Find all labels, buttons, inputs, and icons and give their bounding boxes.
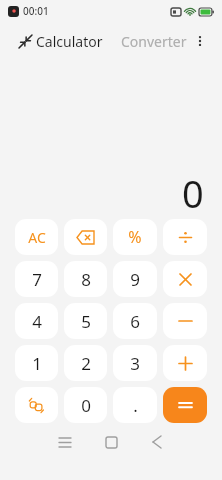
button[interactable]: More options bbox=[186, 27, 214, 55]
staticText: % bbox=[128, 226, 142, 248]
button[interactable]: Multiply bbox=[163, 261, 207, 297]
button[interactable]: 1 bbox=[15, 345, 58, 381]
button[interactable]: AC bbox=[15, 219, 58, 255]
button[interactable]: Minus bbox=[163, 303, 207, 339]
staticText: 6 bbox=[130, 310, 140, 333]
staticText: 0 bbox=[182, 167, 204, 219]
staticText: 8 bbox=[81, 268, 91, 291]
button[interactable]: 6 bbox=[113, 303, 157, 339]
staticText: 4 bbox=[32, 310, 42, 333]
staticText: 0 bbox=[81, 394, 91, 417]
staticText: 1 bbox=[32, 352, 42, 375]
button[interactable]: 8 bbox=[64, 261, 107, 297]
button[interactable]: 2 bbox=[64, 345, 107, 381]
button[interactable]: Collapse bbox=[10, 26, 40, 56]
staticText: 7 bbox=[32, 268, 42, 291]
button[interactable]: Equals bbox=[163, 387, 207, 423]
staticText: . bbox=[133, 394, 138, 417]
button[interactable]: 9 bbox=[113, 261, 157, 297]
button[interactable]: Back bbox=[134, 429, 180, 455]
button[interactable]: Plus bbox=[163, 345, 207, 381]
button[interactable]: 4 bbox=[15, 303, 58, 339]
button[interactable]: 5 bbox=[64, 303, 107, 339]
staticText: Calculator bbox=[36, 32, 103, 51]
staticText: 5 bbox=[81, 310, 91, 333]
button[interactable]: . bbox=[113, 387, 157, 423]
button[interactable]: Home bbox=[88, 429, 134, 455]
button[interactable]: 3 bbox=[113, 345, 157, 381]
staticText: 9 bbox=[130, 268, 140, 291]
button[interactable]: 7 bbox=[15, 261, 58, 297]
staticText: 00:01 bbox=[23, 4, 49, 18]
staticText: AC bbox=[28, 228, 46, 247]
button[interactable]: Scientific bbox=[15, 387, 58, 423]
staticText: 2 bbox=[81, 352, 91, 375]
button[interactable]: Backspace bbox=[64, 219, 107, 255]
staticText: 3 bbox=[130, 352, 140, 375]
button[interactable]: 0 bbox=[64, 387, 107, 423]
staticText: Converter bbox=[121, 32, 187, 51]
button[interactable]: % bbox=[113, 219, 157, 255]
button[interactable]: Converter bbox=[115, 28, 193, 55]
button[interactable]: Recents bbox=[42, 429, 88, 455]
button[interactable]: Divide bbox=[163, 219, 207, 255]
button[interactable]: Calculator bbox=[30, 28, 109, 55]
